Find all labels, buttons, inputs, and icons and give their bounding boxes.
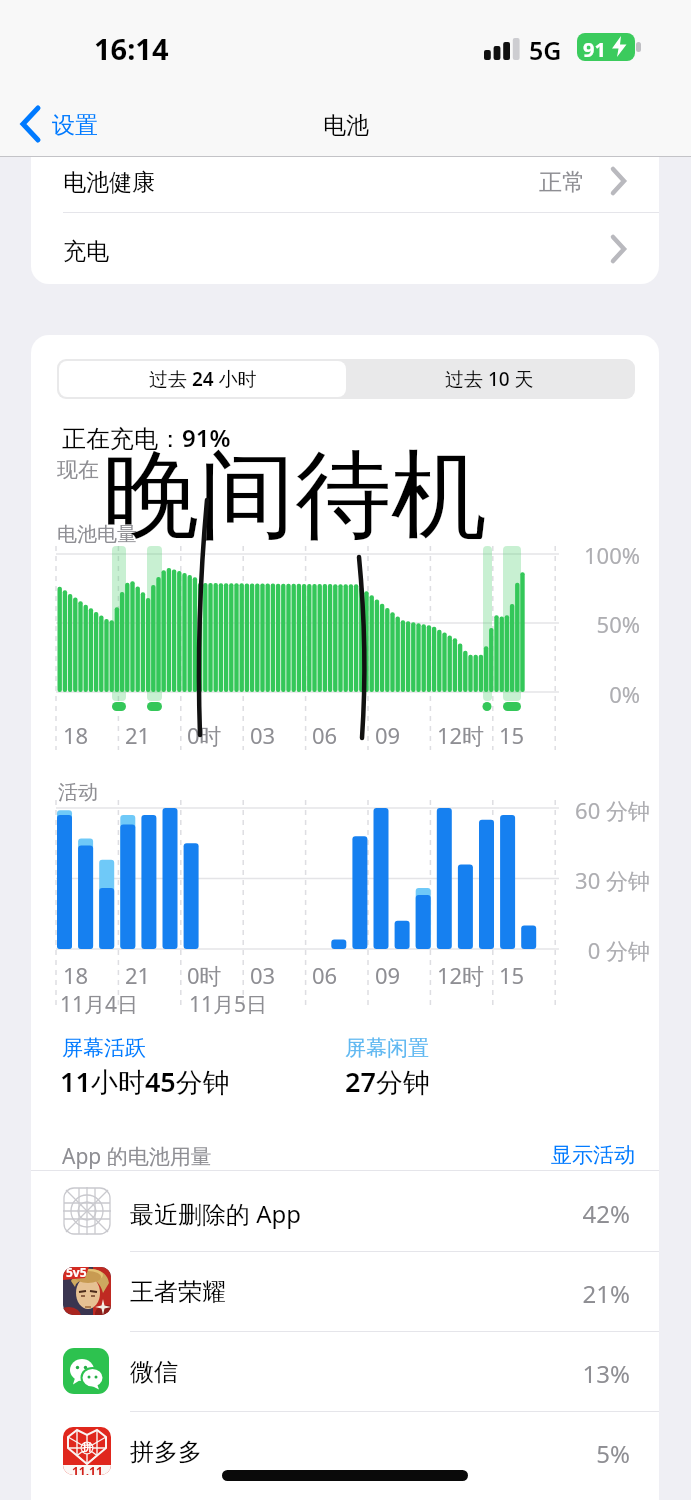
button[interactable] (31, 1411, 659, 1491)
button[interactable] (59, 361, 346, 397)
staticText: 王者荣耀 (130, 1277, 226, 1307)
staticText: 18 (63, 960, 89, 990)
staticText: 15 (499, 960, 525, 990)
staticText: 21% (582, 1277, 630, 1310)
staticText: 11月4日 (60, 990, 139, 1019)
staticText: 27分钟 (345, 1063, 430, 1100)
button[interactable]: 显示活动 (335, 1142, 635, 1168)
button[interactable] (31, 1331, 659, 1411)
staticText: 30 分钟 (575, 865, 650, 895)
staticText: 11月5日 (189, 990, 268, 1019)
staticText: 正在充电：91% (62, 421, 231, 454)
staticText: 电池电量 (57, 522, 137, 547)
staticText: 91 (583, 36, 606, 63)
staticText: 12时 (437, 960, 485, 990)
staticText: 0时 (187, 960, 222, 990)
staticText: 充电 (63, 237, 109, 266)
staticText: 屏幕闲置 (345, 1035, 429, 1061)
staticText: 11小时45分钟 (60, 1063, 230, 1100)
staticText: 21 (125, 960, 151, 990)
staticText: 活动 (58, 780, 98, 805)
staticText: 42% (582, 1197, 630, 1230)
staticText: 拼 (82, 1441, 92, 1454)
staticText: 15 (499, 720, 525, 750)
staticText: 0 分钟 (587, 935, 650, 965)
staticText: 0% (609, 679, 640, 709)
button[interactable]: 设置 (52, 111, 98, 140)
staticText: 5% (596, 1437, 630, 1470)
staticText: 过去 24 小时 (149, 366, 257, 392)
staticText: 09 (375, 720, 401, 750)
staticText: 晚间待机 (103, 436, 487, 557)
button[interactable] (346, 361, 633, 397)
button[interactable] (31, 157, 659, 213)
staticText: 正常 (539, 168, 585, 197)
staticText: 电池健康 (63, 168, 155, 197)
staticText: 过去 10 天 (445, 366, 534, 392)
staticText: 屏幕活跃 (62, 1035, 146, 1061)
staticText: 12时 (437, 720, 485, 750)
staticText: 5G (529, 33, 562, 67)
staticText: 100% (583, 540, 640, 570)
staticText: 5v5 (66, 1267, 87, 1280)
staticText: 电池 (323, 111, 369, 140)
button[interactable] (31, 1251, 659, 1331)
staticText: 03 (250, 960, 276, 990)
staticText: App 的电池用量 (62, 1142, 212, 1171)
staticText: 06 (312, 720, 338, 750)
staticText: 微信 (130, 1357, 178, 1387)
button[interactable] (20, 106, 42, 142)
staticText: 06 (312, 960, 338, 990)
staticText: 16:14 (94, 29, 169, 68)
staticText: 0时 (187, 720, 222, 750)
staticText: 03 (250, 720, 276, 750)
button[interactable] (31, 1171, 659, 1251)
staticText: 18 (63, 720, 89, 750)
staticText: 11.11 (72, 1463, 103, 1475)
staticText: 最近删除的 App (130, 1197, 302, 1230)
staticText: 50% (596, 609, 640, 639)
button[interactable] (31, 213, 659, 284)
staticText: 60 分钟 (575, 795, 650, 825)
staticText: 显示活动 (551, 1142, 635, 1168)
staticText: 09 (375, 960, 401, 990)
staticText: 21 (125, 720, 151, 750)
staticText: 拼多多 (130, 1437, 202, 1467)
staticText: 13% (582, 1357, 630, 1390)
staticText: 现在 (57, 457, 99, 483)
